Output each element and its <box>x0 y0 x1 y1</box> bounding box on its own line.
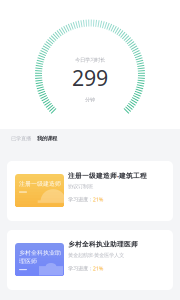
button[interactable]: 乡村全科执业助 <box>7 230 173 290</box>
staticText: 21% <box>93 196 103 203</box>
staticText: 注册一级建造师 <box>19 180 61 188</box>
staticText: 理医师 <box>19 258 37 265</box>
staticText: 学习进度： <box>68 265 93 272</box>
staticText: 乡村全科执业助 <box>19 249 61 257</box>
staticText: 乡村全科执业助理医师 <box>68 240 138 248</box>
button[interactable]: 注册一级建造师 <box>7 161 173 221</box>
staticText: 协议订制班 <box>68 183 93 190</box>
staticText: 我的课程 <box>37 135 57 142</box>
staticText: 分钟 <box>85 96 95 103</box>
staticText: 黄金起航班·黄金医学人文 <box>68 251 124 259</box>
staticText: 注册一级建造师-建筑工程 <box>68 171 147 180</box>
staticText: 今日学习时长 <box>75 56 105 63</box>
staticText: 21% <box>93 265 103 272</box>
staticText: 学习进度： <box>68 196 93 203</box>
staticText: 299 <box>72 63 108 92</box>
staticText: 已学直播 <box>11 135 31 142</box>
